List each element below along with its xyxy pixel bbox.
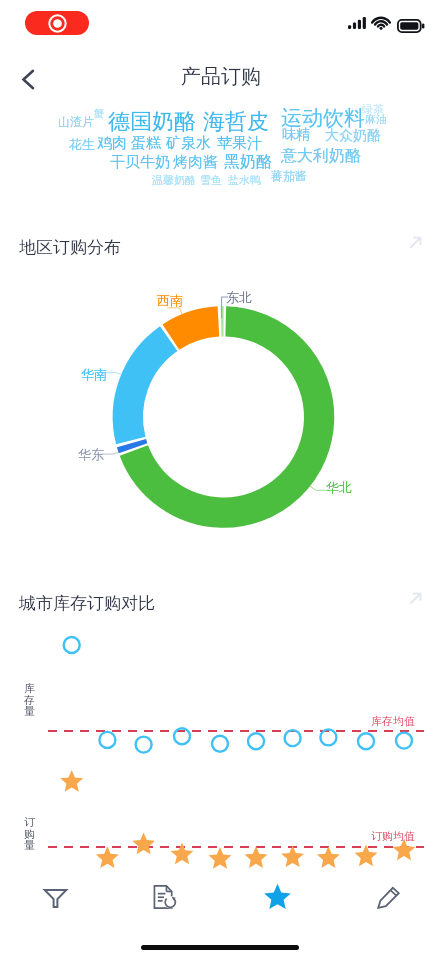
button[interactable]: Back — [7, 59, 48, 100]
button[interactable]: 城市库存订购对比 — [10, 587, 442, 621]
staticText: 矿泉水 — [166, 134, 211, 153]
staticText: 雪鱼 — [200, 173, 222, 187]
staticText: 库存均值 — [371, 714, 415, 728]
staticText: 存 — [24, 693, 35, 707]
staticText: 蛋糕 — [131, 134, 161, 153]
staticText: 量 — [24, 704, 35, 718]
staticText: 订 — [24, 815, 35, 829]
staticText: 城市库存订购对比 — [19, 593, 155, 614]
staticText: 量 — [24, 838, 35, 852]
staticText: 蕃茄酱 — [271, 168, 307, 183]
staticText: 干贝牛奶 — [110, 153, 170, 172]
staticText: 鸡肉 — [97, 134, 127, 153]
button[interactable]: Refresh report — [133, 870, 197, 924]
staticText: 盐水鸭 — [228, 173, 261, 187]
staticText: 运动饮料 — [281, 105, 365, 131]
staticText: 烤肉酱 — [173, 153, 218, 172]
button[interactable]: Edit — [356, 870, 420, 924]
staticText: 山渣片 — [58, 114, 94, 129]
staticText: 花生 — [69, 136, 95, 152]
button[interactable]: Filter — [23, 870, 87, 924]
staticText: 德国奶酪 — [108, 108, 196, 136]
staticText: 麻油 — [365, 112, 387, 126]
button[interactable]: Favorites — [245, 869, 309, 923]
staticText: 绿茶 — [362, 102, 384, 116]
button[interactable]: Expand chart — [400, 583, 430, 613]
staticText: 华南 — [81, 366, 107, 382]
staticText: 味精 — [282, 126, 310, 144]
staticText: 产品订购 — [181, 64, 261, 89]
staticText: 购 — [24, 827, 35, 841]
staticText: 东北 — [226, 289, 252, 305]
staticText: 订购均值 — [371, 829, 415, 843]
staticText: 地区订购分布 — [19, 237, 121, 258]
staticText: 苹果汁 — [217, 134, 262, 153]
staticText: 蟹 — [94, 107, 104, 120]
staticText: 意大利奶酪 — [281, 146, 361, 166]
staticText: 黑奶酪 — [224, 152, 272, 172]
staticText: 西南 — [157, 292, 183, 308]
staticText: 温馨奶酪 — [152, 173, 196, 187]
staticText: 海哲皮 — [203, 108, 269, 136]
staticText: 库 — [24, 681, 35, 695]
button[interactable]: 地区订购分布 — [10, 231, 442, 265]
staticText: 华东 — [78, 446, 104, 462]
staticText: 华北 — [326, 479, 352, 495]
staticText: 大众奶酪 — [325, 127, 381, 145]
button[interactable]: Expand chart — [400, 227, 430, 257]
